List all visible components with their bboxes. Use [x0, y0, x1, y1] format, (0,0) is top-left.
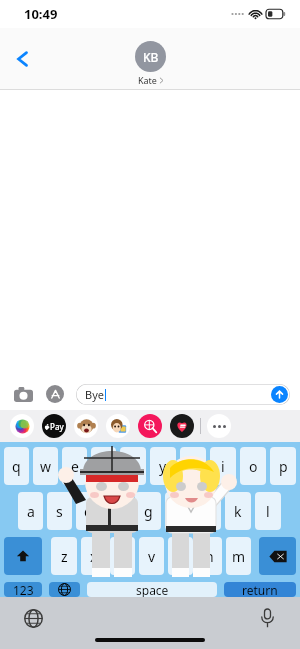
- button[interactable]: c: [110, 537, 135, 575]
- button[interactable]: j: [195, 492, 221, 530]
- button[interactable]: Memoji: [106, 414, 130, 438]
- button[interactable]: Key: [224, 582, 296, 597]
- button[interactable]: q: [4, 447, 29, 485]
- staticText: v: [148, 547, 156, 566]
- button[interactable]: Bye: [76, 384, 290, 405]
- staticText: a: [27, 502, 35, 521]
- staticText: h: [174, 502, 183, 521]
- button[interactable]: Image search: [138, 414, 162, 438]
- button[interactable]: h: [165, 492, 191, 530]
- button[interactable]: u: [180, 447, 206, 485]
- button[interactable]: Apple Pay: [42, 414, 66, 438]
- staticText: Bye: [85, 387, 104, 402]
- staticText: r: [101, 457, 107, 476]
- button[interactable]: g: [135, 492, 161, 530]
- button[interactable]: Language: [22, 607, 44, 629]
- button[interactable]: n: [197, 537, 222, 575]
- button[interactable]: Send: [271, 386, 288, 403]
- button[interactable]: z: [51, 537, 77, 575]
- button[interactable]: v: [139, 537, 164, 575]
- button[interactable]: Camera: [10, 381, 36, 407]
- button[interactable]: i: [210, 447, 236, 485]
- button[interactable]: Key: [49, 582, 80, 597]
- button[interactable]: p: [270, 447, 296, 485]
- button[interactable]: b: [168, 537, 193, 575]
- staticText: l: [266, 502, 270, 521]
- staticText: 123: [13, 582, 34, 597]
- button[interactable]: Key: [4, 582, 42, 597]
- staticText: o: [249, 457, 258, 476]
- staticText: t: [130, 457, 136, 476]
- staticText: y: [159, 457, 167, 476]
- button[interactable]: t: [120, 447, 146, 485]
- staticText: m: [232, 547, 246, 566]
- button[interactable]: k: [225, 492, 251, 530]
- button[interactable]: Animoji: [74, 414, 98, 438]
- button[interactable]: l: [255, 492, 281, 530]
- staticText: 10:49: [24, 5, 58, 23]
- staticText: z: [61, 547, 68, 566]
- staticText: d: [84, 502, 93, 521]
- button[interactable]: Key: [87, 582, 217, 597]
- staticText: k: [234, 502, 242, 521]
- staticText: Kate: [138, 74, 157, 86]
- staticText: u: [189, 457, 198, 476]
- button[interactable]: r: [91, 447, 116, 485]
- staticText: n: [205, 547, 214, 566]
- button[interactable]: Photos: [10, 414, 34, 438]
- staticText: i: [221, 457, 225, 476]
- button[interactable]: Dictation: [256, 607, 278, 629]
- staticText: return: [242, 582, 278, 597]
- staticText: f: [116, 502, 121, 521]
- staticText: s: [56, 502, 63, 521]
- button[interactable]: Back: [6, 42, 40, 76]
- button[interactable]: Key: [259, 537, 296, 575]
- button[interactable]: d: [76, 492, 101, 530]
- button[interactable]: App Store: [42, 381, 68, 407]
- staticText: p: [279, 457, 288, 476]
- staticText: KB: [143, 49, 159, 65]
- staticText: space: [136, 582, 169, 597]
- staticText: e: [71, 457, 79, 476]
- button[interactable]: m: [226, 537, 251, 575]
- button[interactable]: KB: [135, 41, 166, 86]
- button[interactable]: a: [18, 492, 43, 530]
- button[interactable]: More: [207, 414, 231, 438]
- button[interactable]: w: [33, 447, 58, 485]
- staticText: q: [12, 457, 21, 476]
- button[interactable]: e: [62, 447, 87, 485]
- button[interactable]: s: [47, 492, 72, 530]
- button[interactable]: f: [105, 492, 131, 530]
- button[interactable]: Music: [170, 414, 194, 438]
- button[interactable]: Key: [4, 537, 42, 575]
- staticText: Pay: [50, 421, 64, 432]
- staticText: x: [90, 547, 98, 566]
- button[interactable]: y: [150, 447, 176, 485]
- staticText: g: [144, 502, 153, 521]
- staticText: w: [40, 457, 52, 476]
- button[interactable]: x: [81, 537, 106, 575]
- button[interactable]: o: [240, 447, 266, 485]
